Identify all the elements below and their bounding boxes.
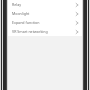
staticText: VR Smart networking — [12, 29, 75, 34]
button[interactable]: VR Smart networking — [8, 27, 82, 36]
button[interactable]: Moonlight — [8, 9, 82, 18]
button[interactable]: Relay — [8, 0, 82, 9]
button[interactable]: Expand function — [8, 18, 82, 27]
staticText: Expand function — [12, 20, 75, 25]
staticText: Moonlight — [12, 11, 75, 16]
staticText: Relay — [12, 2, 75, 7]
